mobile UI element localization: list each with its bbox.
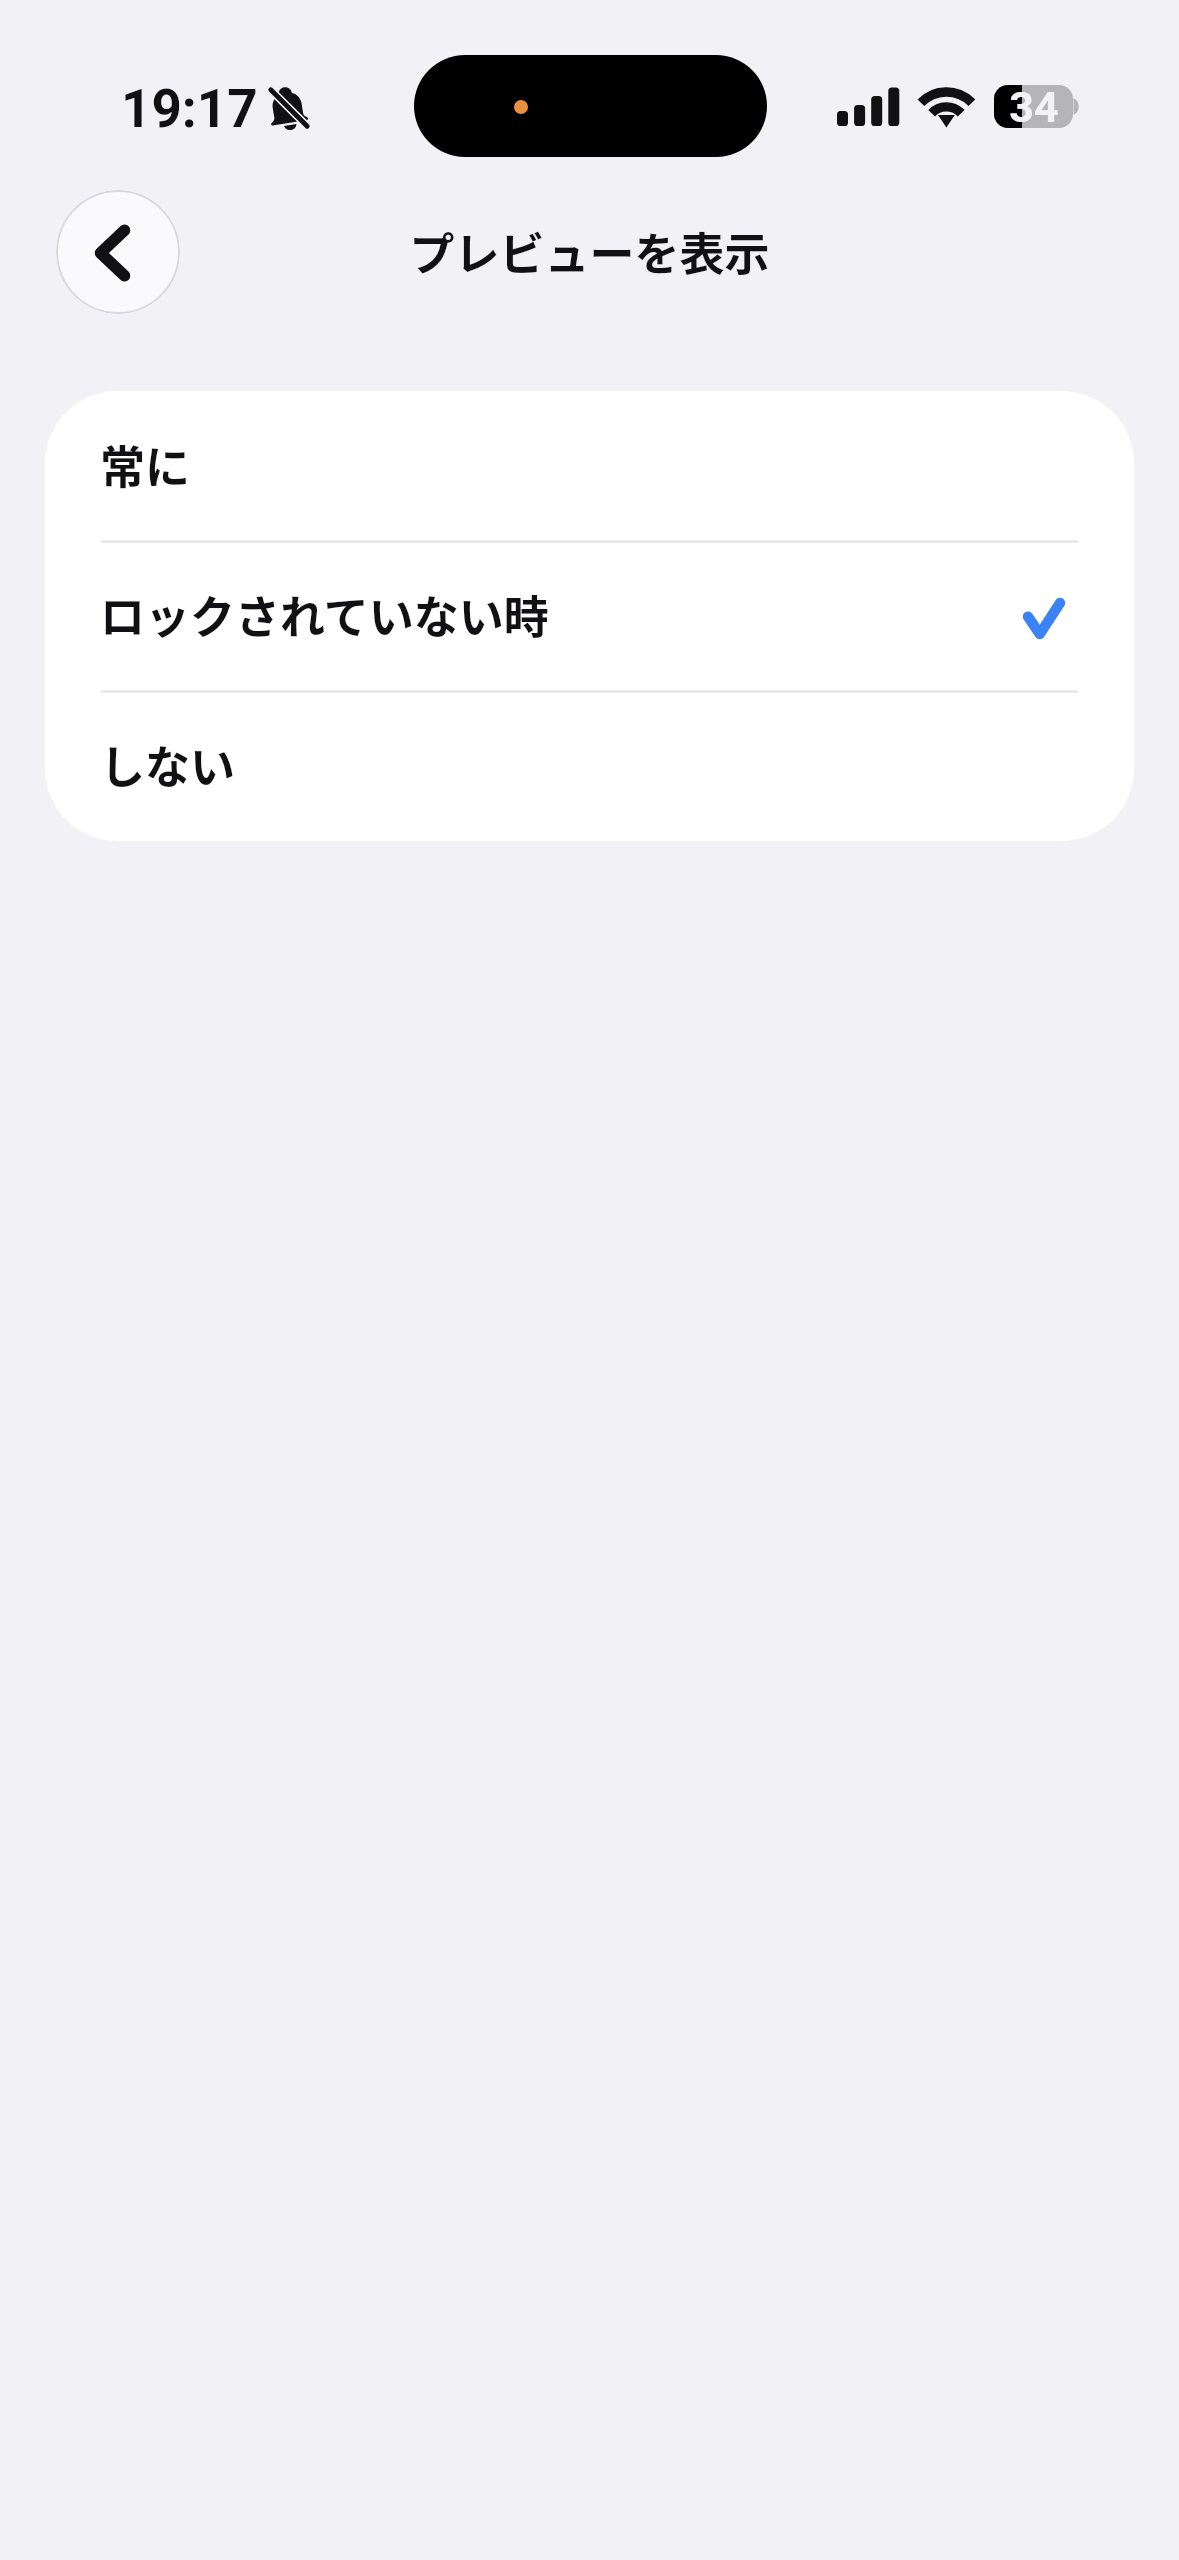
staticText: 34: [1009, 82, 1059, 125]
button[interactable]: Back: [56, 190, 180, 314]
staticText: プレビューを表示: [0, 219, 1179, 284]
staticText: 常に: [100, 432, 191, 497]
staticText: 19:17: [121, 78, 258, 140]
staticText: しない: [100, 732, 236, 797]
button[interactable]: ロックされていない時: [45, 541, 1134, 691]
button[interactable]: しない: [45, 691, 1134, 841]
button[interactable]: 常に: [45, 391, 1134, 541]
staticText: ロックされていない時: [100, 582, 549, 647]
